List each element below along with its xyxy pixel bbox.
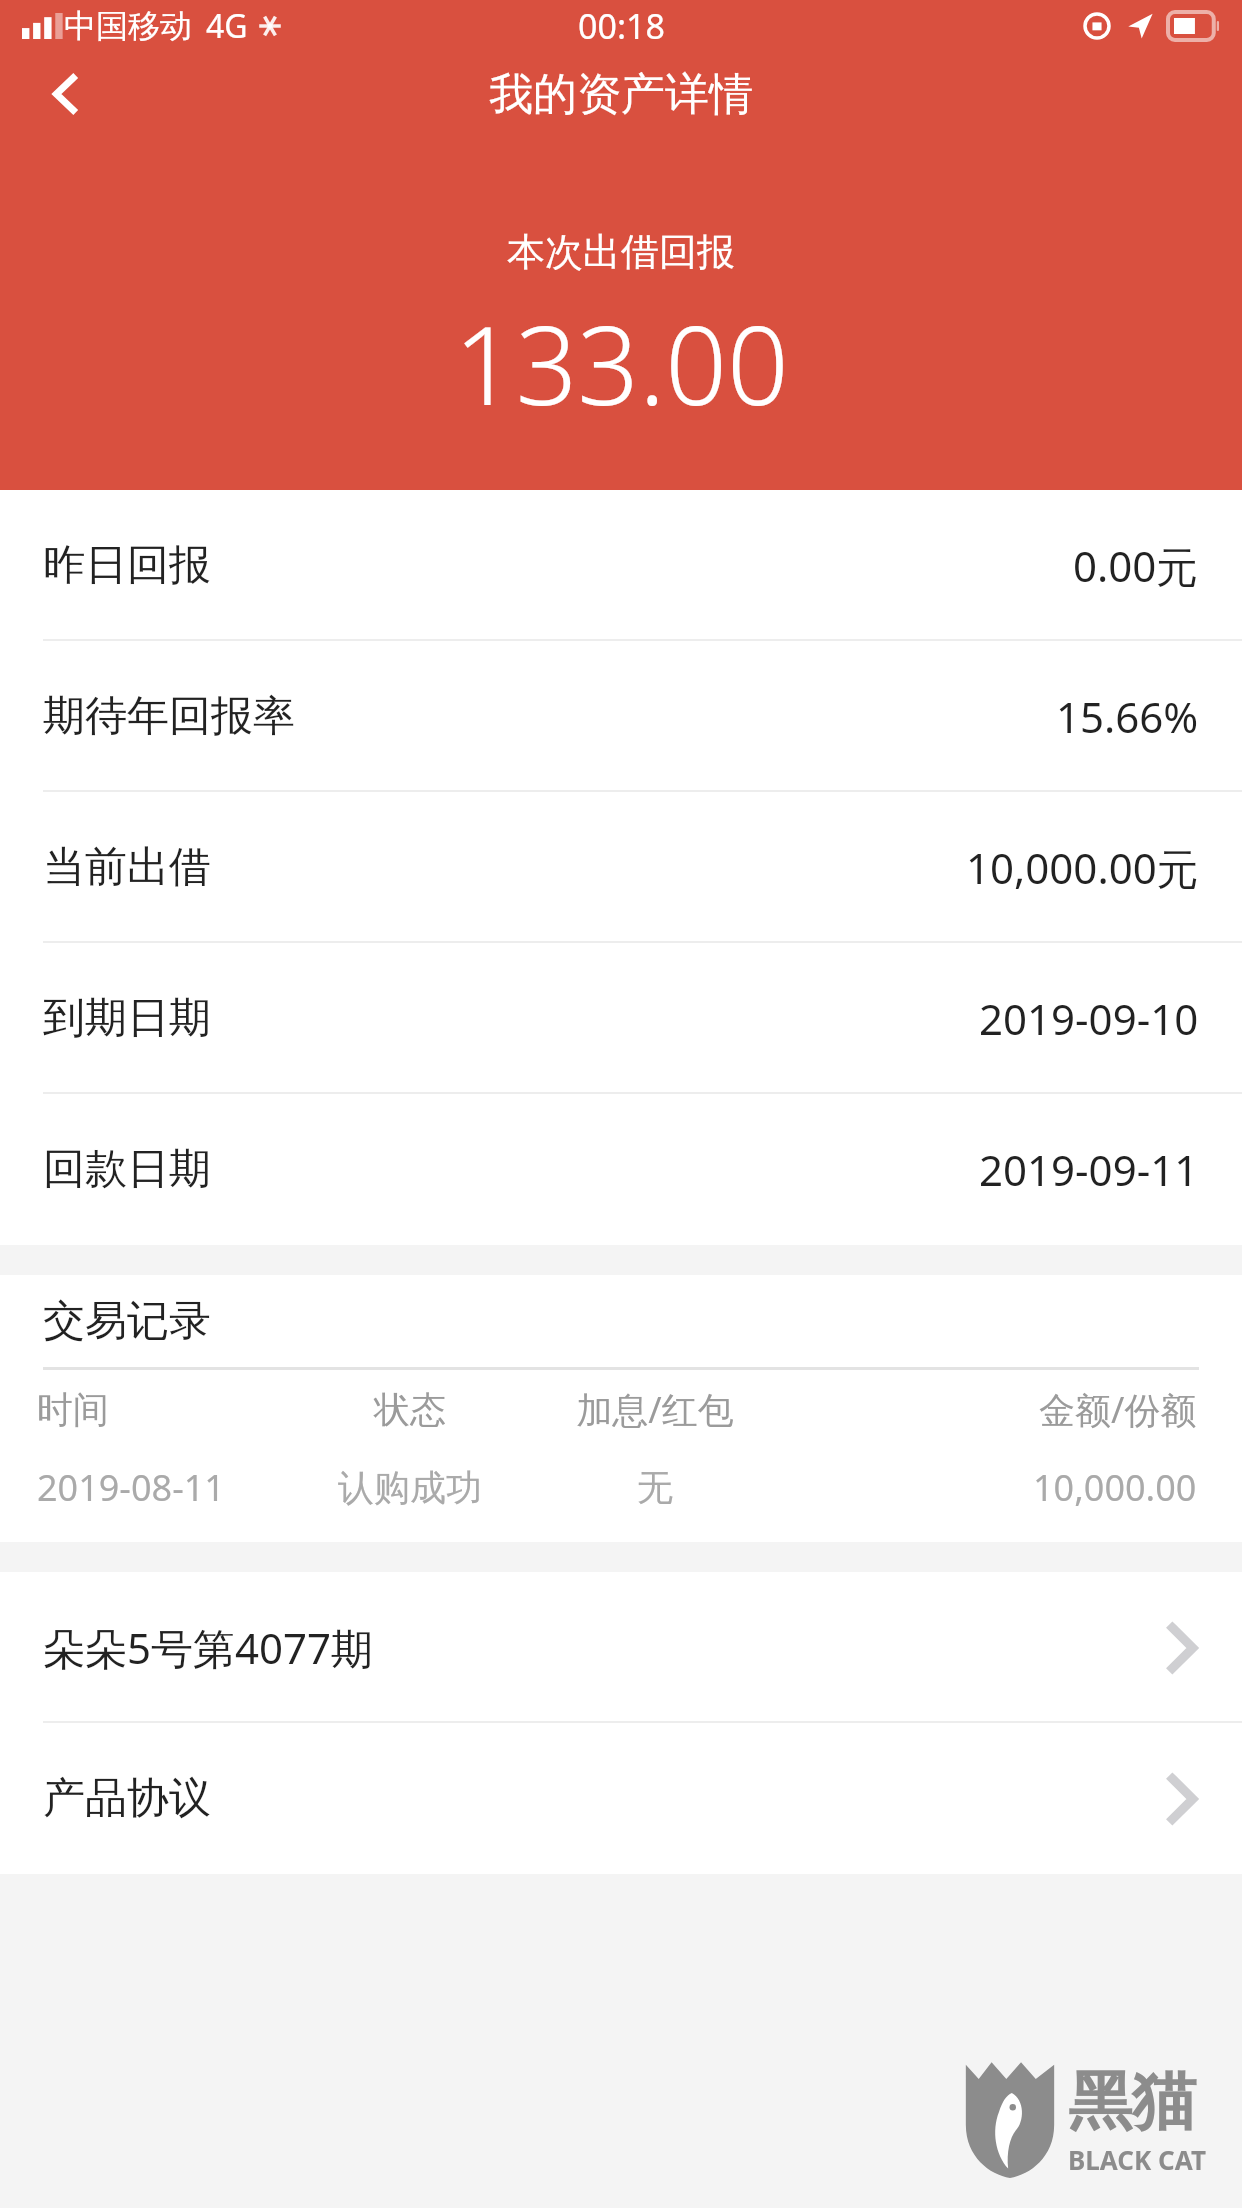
staticText: 昨日回报 <box>43 539 211 592</box>
staticText: 15.66% <box>1056 688 1199 745</box>
button[interactable]: 期待年回报率 <box>0 641 1242 792</box>
staticText: 交易记录 <box>43 1295 211 1348</box>
button[interactable]: 昨日回报 <box>0 490 1242 641</box>
staticText: 0.00元 <box>1073 537 1199 594</box>
staticText: 产品协议 <box>43 1772 211 1825</box>
staticText: 加息/红包 <box>576 1385 734 1434</box>
staticText: 黑猫 <box>1068 2061 1196 2142</box>
button[interactable]: 朵朵5号第4077期 <box>0 1572 1242 1723</box>
staticText: 朵朵5号第4077期 <box>43 1619 374 1676</box>
staticText: 133.00 <box>454 290 789 437</box>
button[interactable]: 当前出借 <box>0 792 1242 943</box>
staticText: 无 <box>637 1465 673 1510</box>
staticText: 期待年回报率 <box>43 690 295 743</box>
staticText: 回款日期 <box>43 1143 211 1196</box>
staticText: 状态 <box>374 1387 446 1432</box>
staticText: 中国移动 <box>64 6 192 46</box>
staticText: 10,000.00 <box>1033 1463 1197 1512</box>
staticText: 我的资产详情 <box>489 67 753 122</box>
staticText: 4G <box>206 4 248 48</box>
staticText: 10,000.00元 <box>966 839 1199 896</box>
staticText: 2019-08-11 <box>37 1463 225 1512</box>
staticText: 到期日期 <box>43 992 211 1045</box>
staticText: 认购成功 <box>338 1465 482 1510</box>
button[interactable]: 产品协议 <box>0 1723 1242 1874</box>
button[interactable]: 到期日期 <box>0 943 1242 1094</box>
staticText: BLACK CAT <box>1068 2142 1206 2177</box>
staticText: 00:18 <box>578 3 665 49</box>
staticText: 2019-09-10 <box>979 990 1199 1047</box>
staticText: 当前出借 <box>43 841 211 894</box>
staticText: 金额/份额 <box>1039 1385 1197 1434</box>
staticText: 本次出借回报 <box>507 228 735 276</box>
button[interactable]: Back <box>30 58 102 130</box>
button[interactable]: 回款日期 <box>0 1094 1242 1245</box>
staticText: 时间 <box>37 1387 109 1432</box>
staticText: 2019-09-11 <box>979 1141 1199 1198</box>
